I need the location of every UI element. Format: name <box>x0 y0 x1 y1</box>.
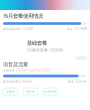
staticText: 剩余 <box>67 27 73 31</box>
staticText: 语音包 <box>26 90 35 93</box>
staticText: 语音及流量 <box>3 61 28 68</box>
staticText: 流量包 <box>6 90 15 93</box>
staticText: 1.22GB <box>21 27 33 31</box>
staticText: 国内语音通话 <box>3 80 21 83</box>
staticText: 当月套餐使用情况 <box>3 13 43 19</box>
staticText: 有效期至 2025年12月31日 23:59 <box>3 69 51 72</box>
staticText: 剩余 <box>68 80 74 83</box>
staticText: 查看更多 <box>44 90 56 93</box>
button[interactable]: 查看更多 <box>43 88 58 95</box>
staticText: 0.00元 <box>76 55 87 61</box>
button[interactable]: 语音包 <box>23 88 38 95</box>
staticText: 13.78GB <box>73 27 87 31</box>
staticText: 国内通用流量 <box>3 27 21 31</box>
button[interactable]: 流量包 <box>3 88 18 95</box>
staticText: 220分钟 <box>74 80 87 83</box>
staticText: 基础套餐 <box>27 40 47 46</box>
staticText: 5G畅享套餐 129元档 <box>27 47 63 53</box>
staticText: 80分钟 <box>21 80 32 83</box>
